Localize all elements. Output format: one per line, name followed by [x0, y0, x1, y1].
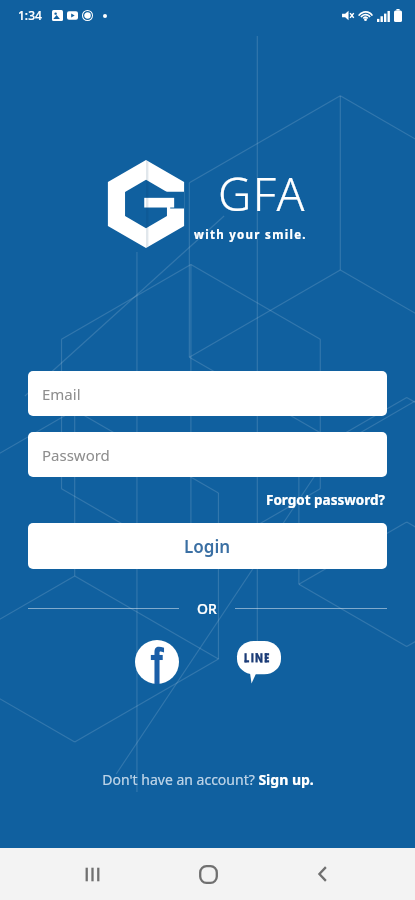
staticText: Email: [42, 384, 81, 404]
button[interactable]: Email: [28, 371, 387, 416]
button[interactable]: Sign in with Facebook: [133, 638, 181, 686]
staticText: Password: [42, 445, 110, 465]
staticText: Forgot password?: [266, 491, 385, 509]
button[interactable]: Password: [28, 432, 387, 477]
button[interactable]: Forgot password?: [264, 488, 387, 512]
staticText: GFA: [218, 162, 307, 225]
button[interactable]: Don't have an account? Sign up.: [92, 765, 324, 794]
button[interactable]: Sign in with LINE: [235, 638, 283, 686]
button[interactable]: Back: [299, 850, 347, 898]
staticText: with your smile.: [194, 227, 307, 243]
staticText: OR: [197, 599, 217, 618]
button[interactable]: Login: [28, 523, 387, 569]
button[interactable]: Recent apps: [68, 850, 116, 898]
staticText: Login: [184, 535, 231, 558]
staticText: 1:34: [18, 7, 42, 23]
button[interactable]: Home: [184, 850, 232, 898]
staticText: Don't have an account? Sign up.: [102, 770, 314, 789]
